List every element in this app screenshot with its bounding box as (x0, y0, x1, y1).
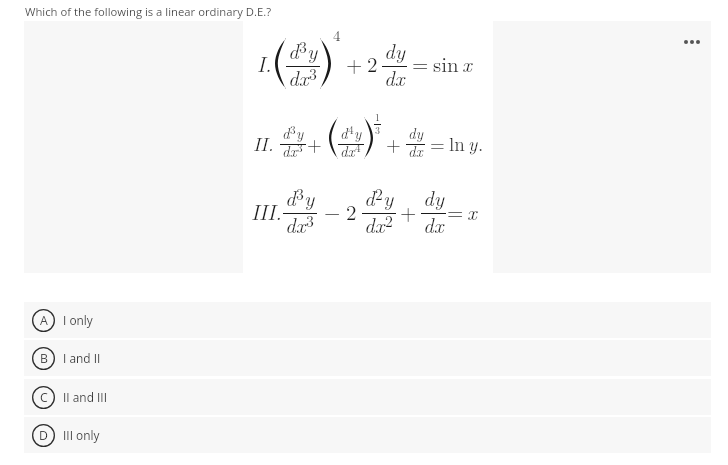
staticText: 2 (385, 209, 393, 231)
staticText: y (354, 122, 362, 143)
staticText: 2 (375, 182, 383, 204)
staticText: = (447, 196, 464, 226)
staticText: A (40, 312, 48, 329)
staticText: + (307, 130, 322, 157)
staticText: sin (433, 48, 459, 78)
staticText: B (40, 350, 48, 367)
staticText: ln (449, 130, 465, 157)
staticText: 3 (299, 35, 307, 57)
staticText: d (288, 35, 299, 65)
staticText: 3 (375, 123, 380, 137)
staticText: 3 (290, 121, 296, 137)
staticText: + (400, 196, 417, 226)
staticText: 3 (309, 62, 317, 84)
staticText: 4 (348, 121, 354, 137)
staticText: I. (257, 48, 272, 78)
staticText: dx (384, 62, 405, 92)
staticText: dx (282, 140, 297, 161)
staticText: 2 (346, 196, 357, 226)
staticText: y (383, 182, 394, 212)
staticText: 2 (367, 48, 378, 78)
staticText: d (340, 122, 348, 143)
staticText: III only (63, 427, 100, 443)
staticText: dy (423, 182, 444, 212)
staticText: x (462, 48, 472, 78)
staticText: dy (384, 35, 405, 65)
button[interactable]: A (24, 302, 711, 338)
staticText: . (478, 130, 484, 157)
staticText: II. (253, 130, 274, 157)
staticText: 4 (333, 24, 341, 45)
staticText: y (468, 130, 478, 157)
button[interactable]: More options (678, 28, 706, 56)
staticText: dx (285, 209, 306, 239)
button[interactable]: C (24, 379, 711, 415)
staticText: dx (288, 62, 309, 92)
staticText: III. (251, 196, 282, 226)
staticText: + (346, 48, 363, 78)
staticText: 3 (296, 182, 304, 204)
staticText: dx (364, 209, 385, 239)
staticText: dx (340, 140, 355, 161)
staticText: x (467, 196, 477, 226)
staticText: dy (408, 122, 423, 143)
staticText: d (364, 182, 375, 212)
staticText: = (412, 48, 429, 78)
staticText: II and III (63, 389, 107, 405)
staticText: y (304, 182, 315, 212)
button[interactable]: B (24, 340, 711, 376)
staticText: d (282, 122, 290, 143)
button[interactable]: D (24, 417, 711, 453)
staticText: 1 (375, 110, 380, 124)
staticText: = (430, 130, 445, 157)
staticText: 3 (297, 139, 303, 155)
staticText: D (39, 427, 48, 444)
staticText: − (324, 196, 341, 226)
staticText: + (386, 130, 401, 157)
staticText: 3 (306, 209, 314, 231)
staticText: I and II (63, 350, 101, 366)
staticText: Which of the following is a linear ordin… (25, 4, 272, 19)
staticText: dx (408, 140, 423, 161)
staticText: dx (423, 209, 444, 239)
staticText: 4 (355, 139, 361, 155)
staticText: d (285, 182, 296, 212)
staticText: I only (63, 312, 93, 328)
staticText: y (307, 35, 318, 65)
staticText: y (296, 122, 304, 143)
staticText: C (40, 389, 48, 406)
